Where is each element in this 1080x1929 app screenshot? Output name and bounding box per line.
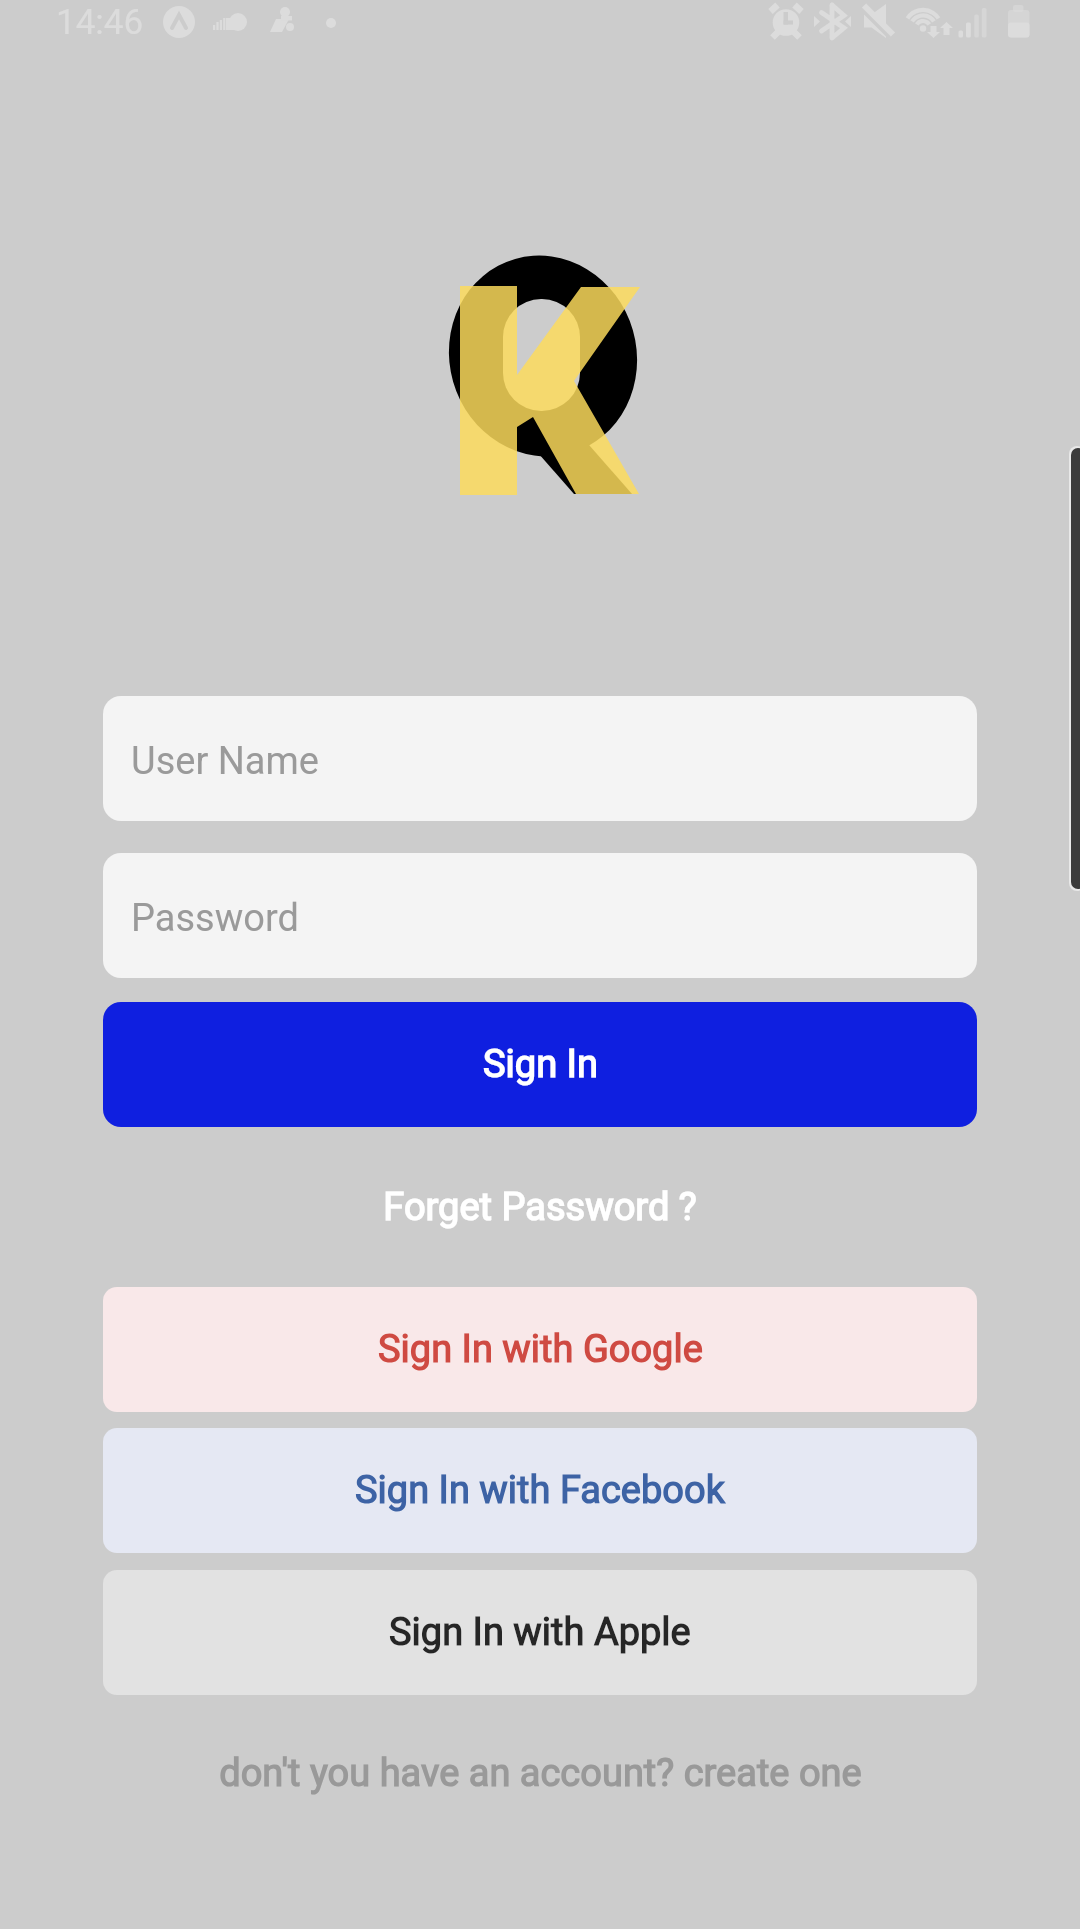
staticText: Password	[131, 896, 299, 941]
button[interactable]: Sign In with Facebook	[103, 1428, 977, 1553]
staticText: 14:46	[56, 2, 144, 43]
button[interactable]: User Name	[103, 696, 977, 821]
staticText: Sign In	[483, 1042, 598, 1087]
staticText: Sign In with Apple	[389, 1610, 691, 1655]
button[interactable]: don't you have an account? create one	[205, 1743, 876, 1804]
staticText: Sign In with Google	[378, 1327, 703, 1372]
staticText: don't you have an account? create one	[219, 1751, 862, 1796]
button[interactable]: Sign In	[103, 1002, 977, 1127]
staticText: Forget Password ?	[383, 1185, 697, 1230]
button[interactable]: Sign In with Apple	[103, 1570, 977, 1695]
button[interactable]: Password	[103, 853, 977, 978]
button[interactable]: Forget Password ?	[369, 1177, 711, 1238]
button[interactable]: Sign In with Google	[103, 1287, 977, 1412]
other: App logo	[0, 0, 1080, 1929]
staticText: Sign In with Facebook	[355, 1468, 725, 1513]
staticText: User Name	[131, 739, 319, 784]
